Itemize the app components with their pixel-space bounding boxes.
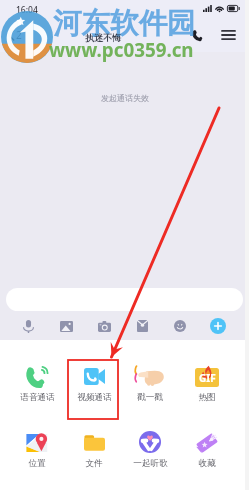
button[interactable]: Red packet	[132, 316, 152, 336]
button[interactable]: Voice message	[18, 316, 38, 336]
staticText: 语音通话	[20, 392, 55, 403]
staticText: 热图	[198, 392, 216, 403]
staticText: 一起听歌	[133, 458, 168, 469]
button[interactable]: GIF	[180, 365, 234, 403]
staticText: www.pc0359.cn	[49, 37, 194, 63]
staticText: 文件	[85, 458, 103, 469]
button[interactable]: 视频通话	[67, 365, 121, 403]
staticText: 戳一戳	[137, 392, 163, 403]
button[interactable]	[6, 288, 243, 311]
button[interactable]: 位置	[10, 431, 64, 469]
button[interactable]: Call	[188, 25, 208, 45]
button[interactable]: Emoji	[170, 316, 190, 336]
button[interactable]: Camera	[94, 316, 114, 336]
button[interactable]: 收藏	[180, 431, 234, 469]
staticText: GIF	[199, 371, 216, 385]
button[interactable]: 戳一戳	[123, 365, 177, 403]
button[interactable]: Menu	[218, 25, 238, 45]
button[interactable]: Gallery	[56, 316, 76, 336]
staticText: 视频通话	[77, 392, 112, 403]
button[interactable]: 一起听歌	[123, 431, 177, 469]
staticText: 执迷不悔	[85, 32, 121, 43]
staticText: 2	[16, 28, 22, 42]
button[interactable]: 语音通话	[10, 365, 64, 403]
staticText: 发起通话失效	[101, 93, 149, 103]
staticText: 位置	[28, 458, 46, 469]
button[interactable]: More	[208, 316, 228, 336]
button[interactable]: 文件	[67, 431, 121, 469]
staticText: 收藏	[198, 458, 216, 469]
staticText: 16:04	[16, 4, 38, 16]
staticText: 河东软件园	[53, 6, 196, 42]
button[interactable]: Back	[4, 22, 26, 48]
